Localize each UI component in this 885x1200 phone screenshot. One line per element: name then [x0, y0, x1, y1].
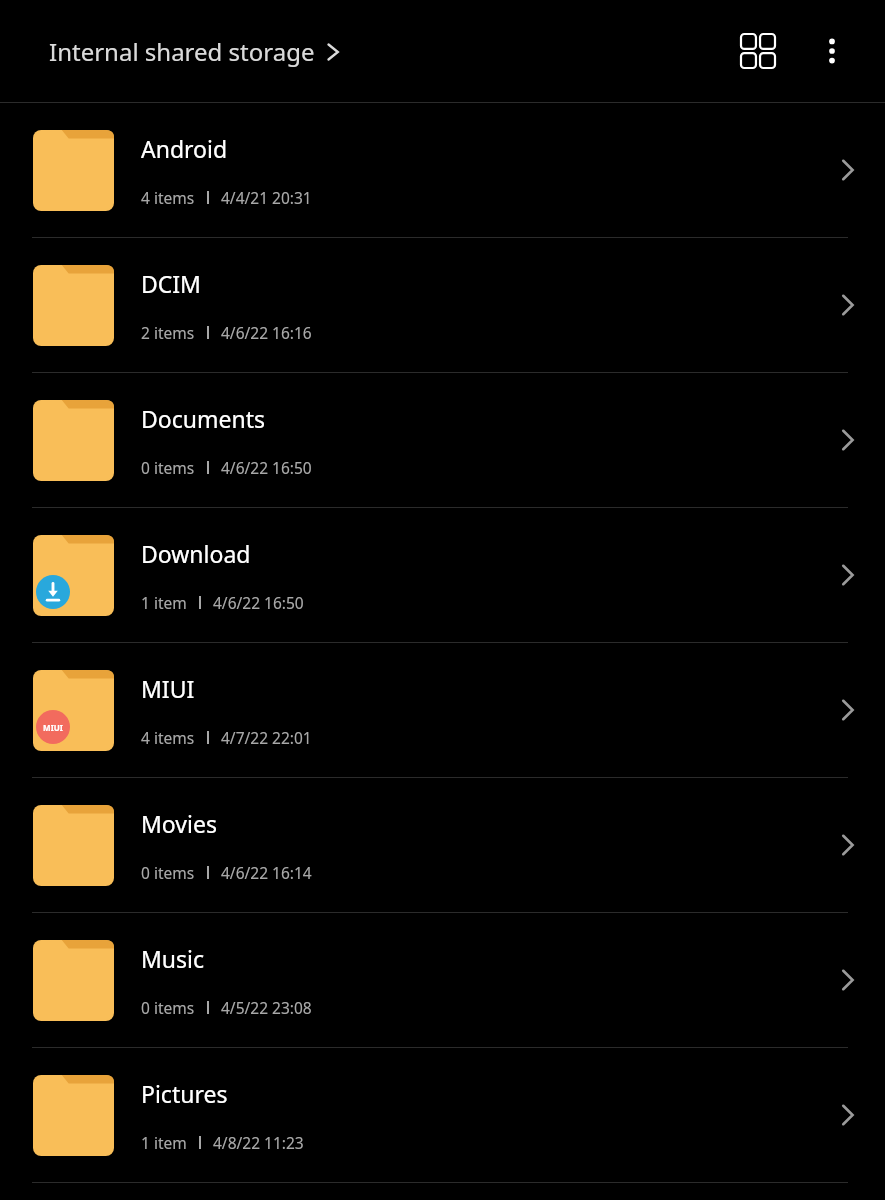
staticText: 4/4/21 20:31	[221, 187, 312, 208]
staticText: 2 items	[141, 322, 195, 343]
staticText: 4/6/22 16:16	[221, 322, 312, 343]
staticText: 4/6/22 16:14	[221, 862, 312, 883]
staticText: 4/5/22 23:08	[221, 997, 312, 1018]
staticText: Movies	[141, 808, 217, 839]
staticText: Internal shared storage	[49, 35, 315, 68]
staticText: 0 items	[141, 862, 195, 883]
staticText: 4 items	[141, 187, 195, 208]
staticText: DCIM	[141, 268, 201, 299]
button[interactable]: Internal shared storage	[38, 27, 352, 76]
staticText: 4/8/22 11:23	[213, 1132, 304, 1153]
staticText: 4 items	[141, 727, 195, 748]
staticText: MIUI	[43, 722, 63, 733]
staticText: 1 item	[141, 592, 187, 613]
staticText: Documents	[141, 403, 265, 434]
button[interactable]: Grid view	[725, 18, 791, 84]
staticText: 4/7/22 22:01	[221, 727, 312, 748]
staticText: Music	[141, 943, 205, 974]
staticText: Download	[141, 538, 251, 569]
button[interactable]: Music	[0, 913, 885, 1047]
staticText: 0 items	[141, 457, 195, 478]
staticText: 1 item	[141, 1132, 187, 1153]
button[interactable]: Download	[0, 508, 885, 642]
staticText: Pictures	[141, 1078, 228, 1109]
button[interactable]: Documents	[0, 373, 885, 507]
button[interactable]: Movies	[0, 778, 885, 912]
staticText: Android	[141, 133, 228, 164]
staticText: 4/6/22 16:50	[213, 592, 304, 613]
staticText: 0 items	[141, 997, 195, 1018]
button[interactable]: MIUI	[0, 643, 885, 777]
button[interactable]: More options	[799, 18, 865, 84]
button[interactable]: Android	[0, 103, 885, 237]
button[interactable]: DCIM	[0, 238, 885, 372]
button[interactable]: Pictures	[0, 1048, 885, 1182]
staticText: MIUI	[141, 673, 195, 704]
staticText: 4/6/22 16:50	[221, 457, 312, 478]
